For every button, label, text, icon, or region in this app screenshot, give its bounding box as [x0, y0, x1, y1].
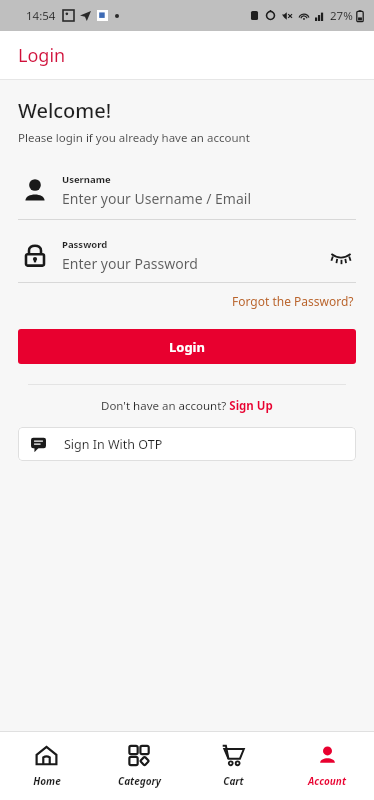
staticText: Don't have an account? Sign Up — [101, 398, 273, 414]
staticText: Welcome! — [18, 97, 112, 124]
staticText: Login — [169, 338, 205, 356]
staticText: Password — [62, 238, 108, 251]
staticText: Enter your Password — [62, 254, 198, 273]
staticText: 27% — [330, 8, 353, 24]
button[interactable]: Category — [93, 738, 186, 794]
button[interactable]: Don't have an account? Sign Up — [93, 396, 281, 416]
staticText: Category — [118, 774, 161, 788]
staticText: Enter your Username / Email — [62, 189, 252, 208]
button[interactable]: Cart — [186, 738, 280, 794]
staticText: Cart — [223, 774, 244, 788]
staticText: Username — [62, 173, 111, 186]
staticText: Please login if you already have an acco… — [18, 130, 250, 146]
button[interactable]: Forgot the Password? — [212, 291, 374, 311]
staticText: Forgot the Password? — [232, 293, 354, 309]
staticText: Home — [33, 774, 61, 788]
staticText: Sign In With OTP — [64, 436, 163, 453]
button[interactable]: Username — [0, 173, 374, 208]
button[interactable]: Sign In With OTP — [18, 427, 356, 461]
button[interactable]: Home — [0, 738, 93, 794]
button[interactable]: Login — [18, 329, 356, 364]
staticText: 14:54 — [26, 8, 56, 24]
staticText: Account — [308, 774, 346, 788]
staticText: Login — [18, 43, 66, 68]
button[interactable]: Account — [280, 738, 374, 794]
button[interactable]: Show password — [326, 241, 356, 271]
button[interactable]: Password — [0, 238, 374, 273]
